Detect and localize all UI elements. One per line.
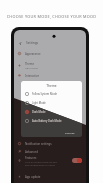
staticText: Appearance <box>25 52 41 56</box>
button[interactable]: Light Mode <box>21 99 82 107</box>
staticText: Appearance <box>25 52 41 56</box>
button[interactable]: Follow System Mode <box>21 90 82 98</box>
button[interactable]: Dark Mode <box>21 108 82 116</box>
button[interactable]: CANCEL <box>63 130 77 135</box>
staticText: Dark Mode <box>32 110 46 114</box>
button[interactable]: Appearance <box>14 48 86 59</box>
staticText: CANCEL <box>65 131 75 134</box>
button[interactable]: Theme <box>14 60 86 71</box>
staticText: Notification settings <box>25 142 52 146</box>
button[interactable]: Advanced <box>14 146 86 157</box>
button[interactable]: Toggle smart follow up <box>72 158 82 163</box>
button[interactable]: Notification settings <box>14 138 86 149</box>
button[interactable]: Auto Battery Dark Mode <box>21 117 82 125</box>
staticText: Settings <box>26 41 39 45</box>
staticText: Turn on smart follow up and get notified… <box>25 160 57 166</box>
button[interactable]: Auto Battery Dark Mode <box>21 117 82 125</box>
staticText: Follow System Mode <box>32 92 57 96</box>
other: Back <box>18 41 23 46</box>
staticText: CANCEL <box>65 131 75 134</box>
button[interactable]: Follow System Mode <box>21 90 82 98</box>
staticText: Theme <box>21 84 82 88</box>
button[interactable]: Notification settings <box>14 138 86 149</box>
staticText: Light Mode <box>32 101 46 105</box>
button[interactable]: Interactive <box>14 70 86 81</box>
staticText: Interactive <box>25 74 40 78</box>
staticText: Theme <box>25 62 35 66</box>
button[interactable]: Toggle smart follow up <box>72 158 82 163</box>
staticText: Advanced <box>25 150 38 154</box>
staticText: Turn on smart follow up and get notified… <box>25 160 57 166</box>
staticText: Notification settings <box>25 142 52 146</box>
button[interactable]: Theme <box>14 60 86 71</box>
staticText: Features <box>25 156 37 160</box>
button[interactable]: Back <box>14 37 86 49</box>
staticText: Auto Battery Dark Mode <box>32 119 62 123</box>
staticText: Dark Mode <box>32 110 46 114</box>
staticText: Interactive <box>25 74 40 78</box>
staticText: Auto Battery Dark Mode <box>32 119 62 123</box>
button[interactable]: App update <box>14 171 86 182</box>
button[interactable]: Appearance <box>14 48 86 59</box>
button[interactable]: Light Mode <box>21 99 82 107</box>
button[interactable]: Back <box>14 37 86 49</box>
staticText: Light mode <box>25 66 38 69</box>
button[interactable]: Features <box>14 153 86 168</box>
staticText: Settings <box>26 41 39 45</box>
button[interactable]: CANCEL <box>63 130 77 135</box>
button[interactable]: Advanced <box>14 146 86 157</box>
button[interactable]: Interactive <box>14 70 86 81</box>
staticText: App update <box>25 175 41 179</box>
staticText: App update <box>25 175 41 179</box>
staticText: Light mode <box>25 66 38 69</box>
other: Back <box>18 41 23 46</box>
button[interactable]: App update <box>14 171 86 182</box>
staticText: CHOOSE YOUR MODE, CHOOSE YOUR MOOD <box>0 14 103 19</box>
staticText: Advanced <box>25 150 38 154</box>
staticText: Features <box>25 156 37 160</box>
staticText: Theme <box>21 84 82 88</box>
staticText: Light Mode <box>32 101 46 105</box>
staticText: Theme <box>25 62 35 66</box>
button[interactable]: Dark Mode <box>21 108 82 116</box>
button[interactable]: Features <box>14 153 86 168</box>
staticText: Follow System Mode <box>32 92 57 96</box>
